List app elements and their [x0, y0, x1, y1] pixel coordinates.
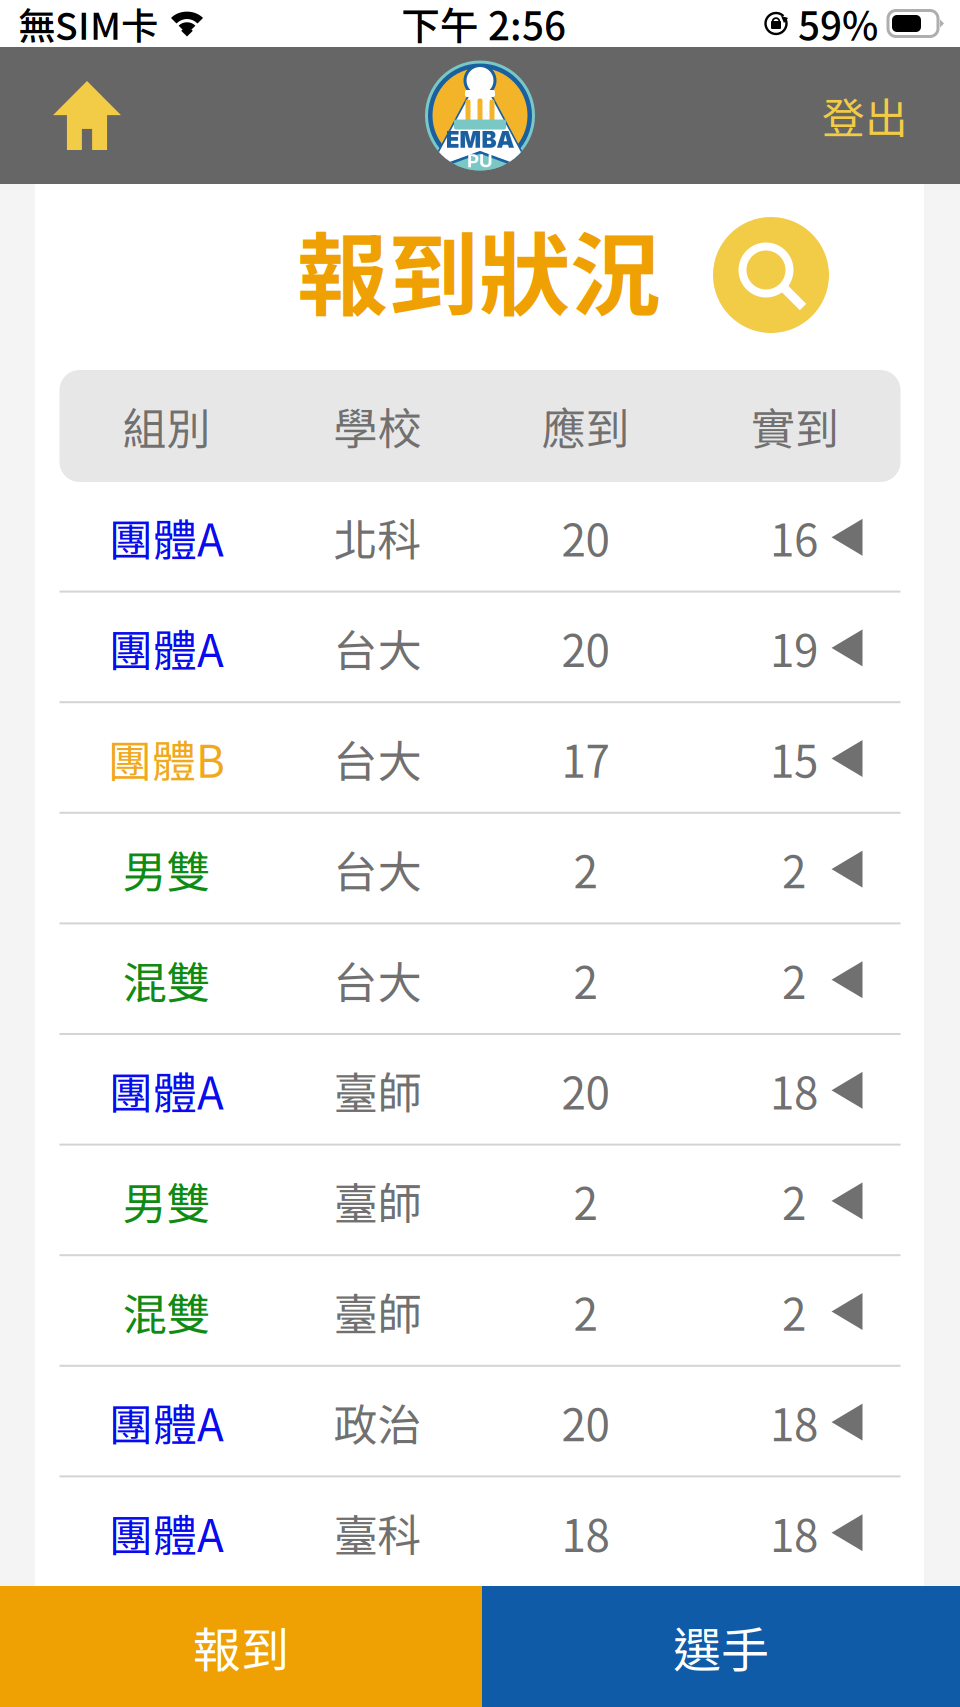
button[interactable]: 登出 [788, 49, 960, 182]
staticText: 17 [561, 727, 609, 790]
button[interactable]: 報到 [0, 1586, 482, 1707]
staticText: 2 [573, 837, 597, 901]
staticText: 混雙 [122, 1280, 210, 1343]
staticText: 20 [561, 1058, 609, 1122]
staticText: 18 [561, 1501, 609, 1564]
staticText: 北科 [333, 505, 421, 569]
staticText: 選手 [673, 1612, 769, 1681]
button[interactable]: 男雙 [59, 1146, 900, 1256]
staticText: 18 [770, 1390, 818, 1454]
button[interactable]: 選手 [482, 1586, 960, 1707]
staticText: 報到 [193, 1612, 289, 1681]
staticText: 混雙 [122, 948, 210, 1011]
staticText: 2 [782, 948, 806, 1011]
staticText: 團體A [109, 1501, 224, 1564]
staticText: 臺師 [333, 1280, 421, 1343]
staticText: 團體A [109, 1390, 224, 1454]
staticText: 15 [770, 727, 818, 790]
staticText: 2 [782, 1169, 806, 1233]
button[interactable]: 團體A [59, 1035, 900, 1146]
button[interactable]: 混雙 [59, 924, 900, 1035]
staticText: 臺科 [333, 1501, 421, 1564]
button[interactable]: 男雙 [59, 814, 900, 924]
staticText: 報到狀況 [297, 203, 661, 335]
staticText: EMBA [445, 126, 514, 153]
staticText: 登出 [822, 85, 908, 146]
staticText: 組別 [122, 394, 210, 458]
staticText: 應到 [541, 394, 629, 458]
staticText: 59% [798, 0, 878, 51]
staticText: PU [467, 149, 493, 172]
staticText: 16 [770, 505, 818, 569]
button[interactable]: 團體A [59, 1477, 900, 1588]
staticText: 20 [561, 505, 609, 569]
staticText: 20 [561, 1390, 609, 1454]
staticText: 團體A [109, 616, 224, 680]
staticText: 團體A [109, 505, 224, 569]
staticText: 團體B [108, 727, 225, 790]
staticText: 臺師 [333, 1058, 421, 1122]
staticText: 2 [782, 837, 806, 901]
staticText: 無SIM卡 [18, 0, 158, 51]
button[interactable]: Home [0, 47, 155, 184]
staticText: 2 [782, 1280, 806, 1343]
button[interactable]: 團體B [59, 703, 900, 814]
staticText: 2 [573, 1169, 597, 1233]
staticText: 20 [561, 616, 609, 680]
staticText: 政治 [333, 1390, 421, 1454]
staticText: 實到 [751, 394, 839, 458]
staticText: 學校 [333, 394, 421, 458]
staticText: 男雙 [122, 1169, 210, 1233]
staticText: 團體A [109, 1058, 224, 1122]
button[interactable]: 團體A [59, 482, 900, 593]
staticText: 男雙 [122, 837, 210, 901]
staticText: 台大 [333, 727, 421, 790]
staticText: 台大 [333, 837, 421, 901]
staticText: 台大 [333, 616, 421, 680]
button[interactable]: Search [713, 217, 829, 333]
staticText: 下午 2:56 [401, 0, 566, 51]
staticText: 19 [770, 616, 818, 680]
staticText: 18 [770, 1058, 818, 1122]
staticText: 2 [573, 1280, 597, 1343]
staticText: 臺師 [333, 1169, 421, 1233]
staticText: 台大 [333, 948, 421, 1011]
button[interactable]: 混雙 [59, 1256, 900, 1367]
staticText: 18 [770, 1501, 818, 1564]
button[interactable]: 團體A [59, 1367, 900, 1477]
staticText: 2 [573, 948, 597, 1011]
button[interactable]: 團體A [59, 593, 900, 703]
